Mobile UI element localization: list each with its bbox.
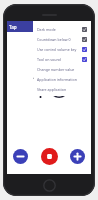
button[interactable]: Decrease (13, 149, 28, 164)
staticText: Use control volume key (37, 47, 82, 52)
button[interactable]: Application information (34, 74, 90, 84)
staticText: 18 (30, 62, 69, 108)
staticText: Countdown below 0 (37, 37, 82, 42)
button[interactable]: Tap counter (7, 21, 33, 32)
button[interactable]: Dark mode (34, 24, 90, 34)
button[interactable]: Countdown below 0 (34, 34, 90, 44)
button[interactable]: Reset (41, 148, 58, 165)
staticText: Dark mode (37, 27, 82, 32)
button[interactable]: Use control volume key (34, 44, 90, 54)
button[interactable]: Tool on sound (34, 54, 90, 64)
button[interactable]: Share application (34, 84, 90, 94)
button[interactable]: 18 (7, 32, 91, 138)
staticText: Application information (37, 77, 87, 82)
button[interactable]: Change number value (34, 64, 90, 74)
staticText: Tap counter (9, 24, 33, 30)
staticText: Tool on sound (37, 57, 82, 62)
staticText: Change number value (37, 67, 87, 72)
staticText: Share application (37, 87, 87, 92)
button[interactable]: Increase (70, 149, 85, 164)
